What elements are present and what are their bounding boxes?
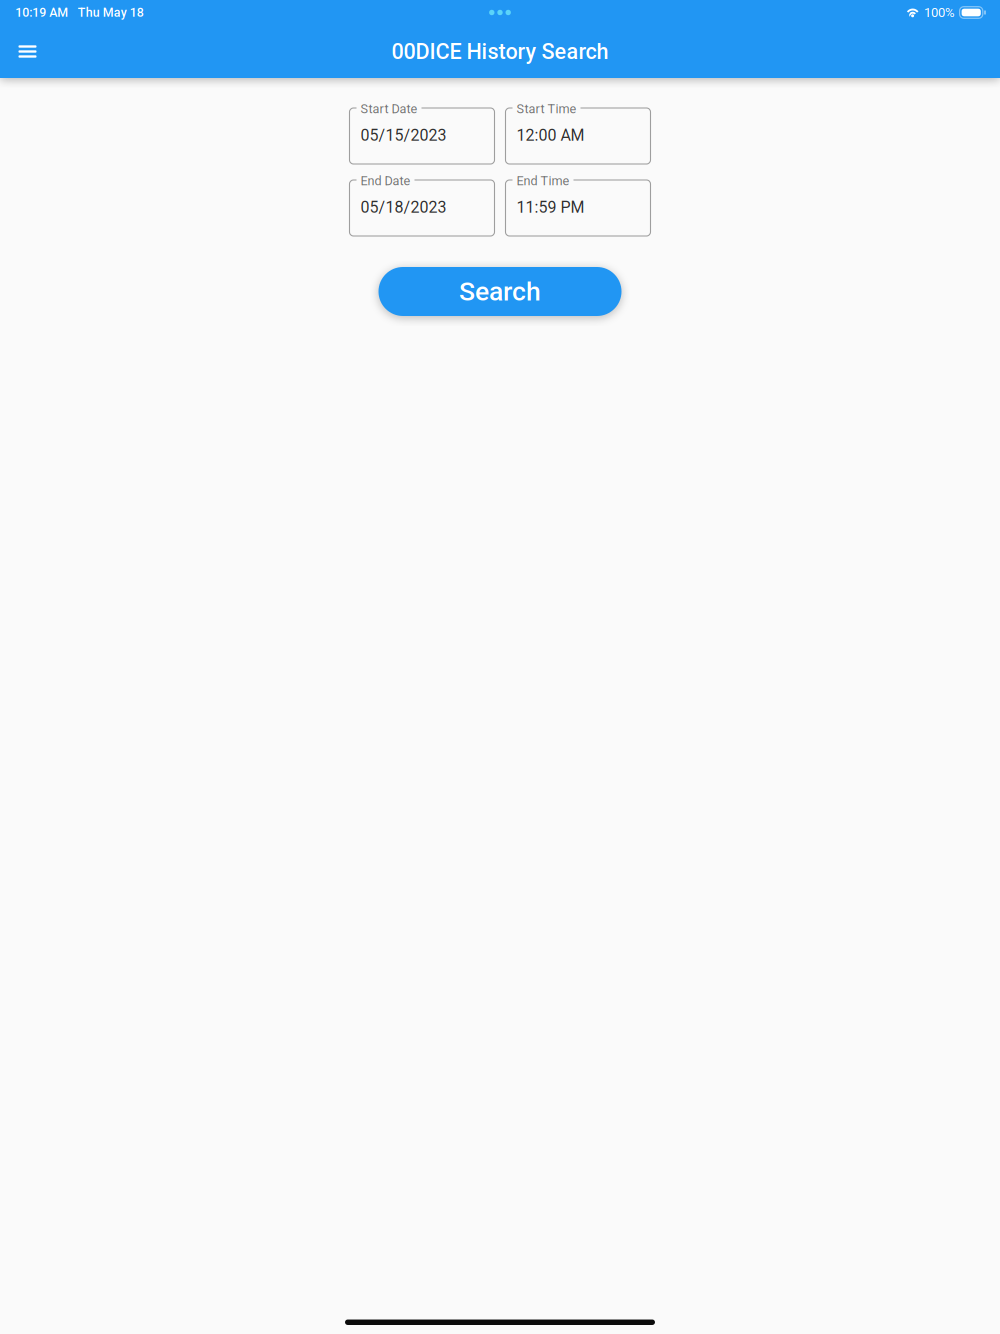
- staticText: 05/18/2023: [360, 198, 446, 217]
- button[interactable]: 11:59 PM: [505, 180, 650, 236]
- staticText: End Time: [516, 173, 569, 188]
- button[interactable]: 05/18/2023: [349, 180, 494, 236]
- staticText: 12:00 AM: [516, 126, 584, 145]
- staticText: Search: [459, 276, 541, 307]
- staticText: End Date: [360, 173, 410, 188]
- button[interactable]: Search: [378, 267, 621, 316]
- staticText: 11:59 PM: [516, 198, 584, 217]
- button[interactable]: 05/15/2023: [349, 108, 494, 164]
- staticText: Thu May 18: [78, 5, 144, 20]
- staticText: 100%: [924, 5, 955, 20]
- button[interactable]: 12:00 AM: [505, 108, 650, 164]
- staticText: Start Date: [360, 101, 417, 116]
- staticText: 00DICE History Search: [391, 39, 608, 64]
- button[interactable]: Open navigation menu: [0, 25, 55, 78]
- staticText: Start Time: [516, 101, 576, 116]
- staticText: 10:19 AM: [15, 5, 68, 20]
- staticText: 05/15/2023: [360, 126, 446, 145]
